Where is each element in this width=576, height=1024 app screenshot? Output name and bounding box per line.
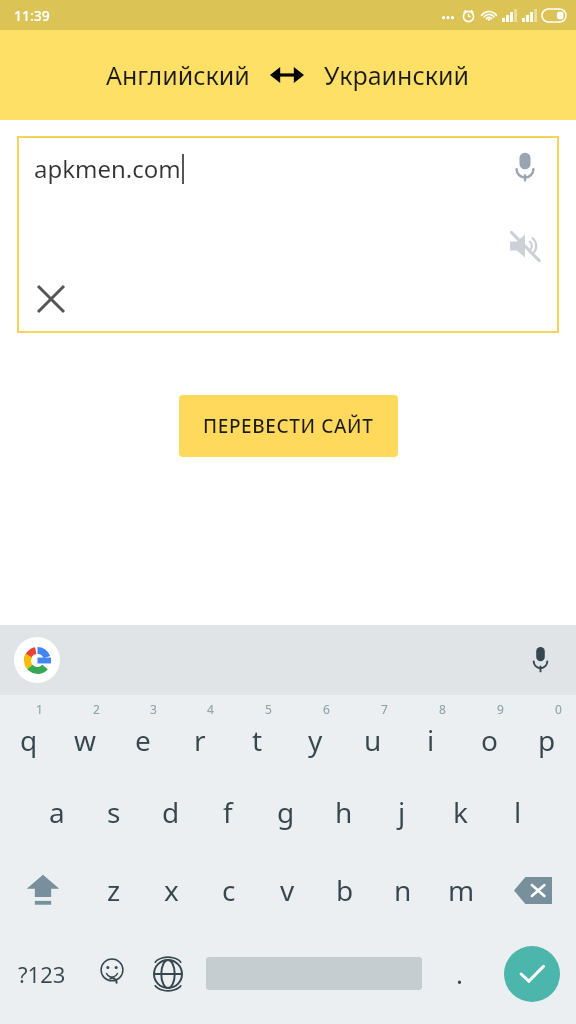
- button[interactable]: c: [200, 851, 258, 929]
- staticText: s: [107, 793, 121, 831]
- button[interactable]: Украинский: [318, 52, 476, 98]
- button[interactable]: x: [142, 851, 200, 929]
- button[interactable]: f: [199, 773, 257, 851]
- button[interactable]: 0: [518, 695, 576, 773]
- staticText: q: [20, 721, 38, 759]
- button[interactable]: v: [258, 851, 316, 929]
- button[interactable]: m: [432, 851, 490, 929]
- staticText: 11:39: [14, 6, 50, 25]
- staticText: e: [135, 721, 151, 759]
- staticText: 1: [36, 701, 43, 717]
- staticText: 3: [150, 701, 157, 717]
- staticText: 7: [381, 701, 388, 717]
- button[interactable]: d: [142, 773, 199, 851]
- staticText: x: [164, 871, 179, 909]
- button[interactable]: 4: [171, 695, 228, 773]
- staticText: 4: [207, 701, 214, 717]
- button[interactable]: z: [85, 851, 142, 929]
- button[interactable]: 9: [460, 695, 518, 773]
- staticText: 0: [555, 701, 562, 717]
- staticText: v: [280, 871, 295, 909]
- button[interactable]: s: [85, 773, 142, 851]
- staticText: d: [162, 793, 180, 831]
- staticText: g: [277, 793, 295, 831]
- staticText: a: [49, 793, 65, 831]
- button[interactable]: l: [489, 773, 547, 851]
- staticText: u: [364, 721, 382, 759]
- staticText: ?123: [18, 959, 66, 989]
- button[interactable]: h: [315, 773, 373, 851]
- button[interactable]: Shift: [0, 851, 85, 929]
- staticText: n: [394, 871, 412, 909]
- staticText: i: [427, 721, 435, 759]
- staticText: Украинский: [324, 58, 470, 92]
- button[interactable]: apkmen.com: [17, 136, 559, 333]
- button[interactable]: Mute: [503, 224, 547, 268]
- button[interactable]: 1: [0, 695, 57, 773]
- staticText: c: [222, 871, 236, 909]
- staticText: apkmen.com: [34, 152, 181, 185]
- staticText: h: [335, 793, 353, 831]
- button[interactable]: g: [257, 773, 315, 851]
- button[interactable]: Clear text: [29, 277, 73, 321]
- staticText: k: [453, 793, 468, 831]
- button[interactable]: Voice input: [505, 148, 545, 188]
- button[interactable]: j: [373, 773, 431, 851]
- button[interactable]: 6: [286, 695, 344, 773]
- staticText: 8: [439, 701, 446, 717]
- staticText: y: [308, 721, 323, 759]
- staticText: Английский: [106, 58, 250, 92]
- button[interactable]: Change language: [140, 929, 196, 1018]
- button[interactable]: Emoji: [84, 929, 140, 1018]
- button[interactable]: 5: [228, 695, 286, 773]
- button[interactable]: .: [431, 929, 487, 1018]
- staticText: m: [448, 871, 475, 909]
- button[interactable]: Enter: [487, 929, 576, 1018]
- staticText: o: [481, 721, 498, 759]
- staticText: 5: [265, 701, 272, 717]
- button[interactable]: ?123: [0, 929, 84, 1018]
- staticText: f: [223, 793, 233, 831]
- button[interactable]: 3: [114, 695, 171, 773]
- button[interactable]: a: [28, 773, 85, 851]
- button[interactable]: Voice typing: [518, 638, 562, 682]
- button[interactable]: 7: [344, 695, 402, 773]
- button[interactable]: 8: [402, 695, 460, 773]
- button[interactable]: Space: [196, 929, 431, 1018]
- button[interactable]: Google search: [14, 637, 60, 683]
- button[interactable]: ПЕРЕВЕСТИ САЙТ: [179, 395, 398, 457]
- button[interactable]: Backspace: [490, 851, 576, 929]
- button[interactable]: Английский: [100, 52, 256, 98]
- staticText: z: [107, 871, 121, 909]
- staticText: w: [74, 721, 97, 759]
- staticText: 6: [323, 701, 330, 717]
- staticText: ПЕРЕВЕСТИ САЙТ: [203, 413, 374, 439]
- staticText: .: [456, 956, 463, 991]
- staticText: j: [398, 793, 406, 831]
- button[interactable]: k: [431, 773, 489, 851]
- button[interactable]: b: [316, 851, 374, 929]
- staticText: 2: [93, 701, 100, 717]
- staticText: p: [538, 721, 556, 759]
- staticText: b: [336, 871, 354, 909]
- staticText: r: [194, 721, 206, 759]
- button[interactable]: n: [374, 851, 432, 929]
- staticText: 9: [497, 701, 504, 717]
- staticText: t: [252, 721, 263, 759]
- staticText: l: [514, 793, 522, 831]
- button[interactable]: 2: [57, 695, 114, 773]
- button[interactable]: Swap languages: [270, 62, 304, 88]
